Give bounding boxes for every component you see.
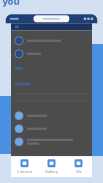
button[interactable]: List item [15, 47, 88, 60]
button[interactable]: List item [15, 109, 88, 122]
button[interactable]: Gallery [38, 159, 65, 174]
button[interactable]: Camera [11, 159, 38, 174]
button[interactable]: List item [15, 122, 88, 135]
staticText: Camera [17, 169, 32, 174]
staticText: File [75, 169, 81, 174]
button[interactable]: List item with detail [15, 135, 88, 148]
button[interactable]: List item [15, 34, 88, 47]
staticText: Gallery [45, 169, 58, 174]
staticText: to keep all-time with you [2, 0, 100, 7]
button[interactable]: File [65, 159, 92, 174]
